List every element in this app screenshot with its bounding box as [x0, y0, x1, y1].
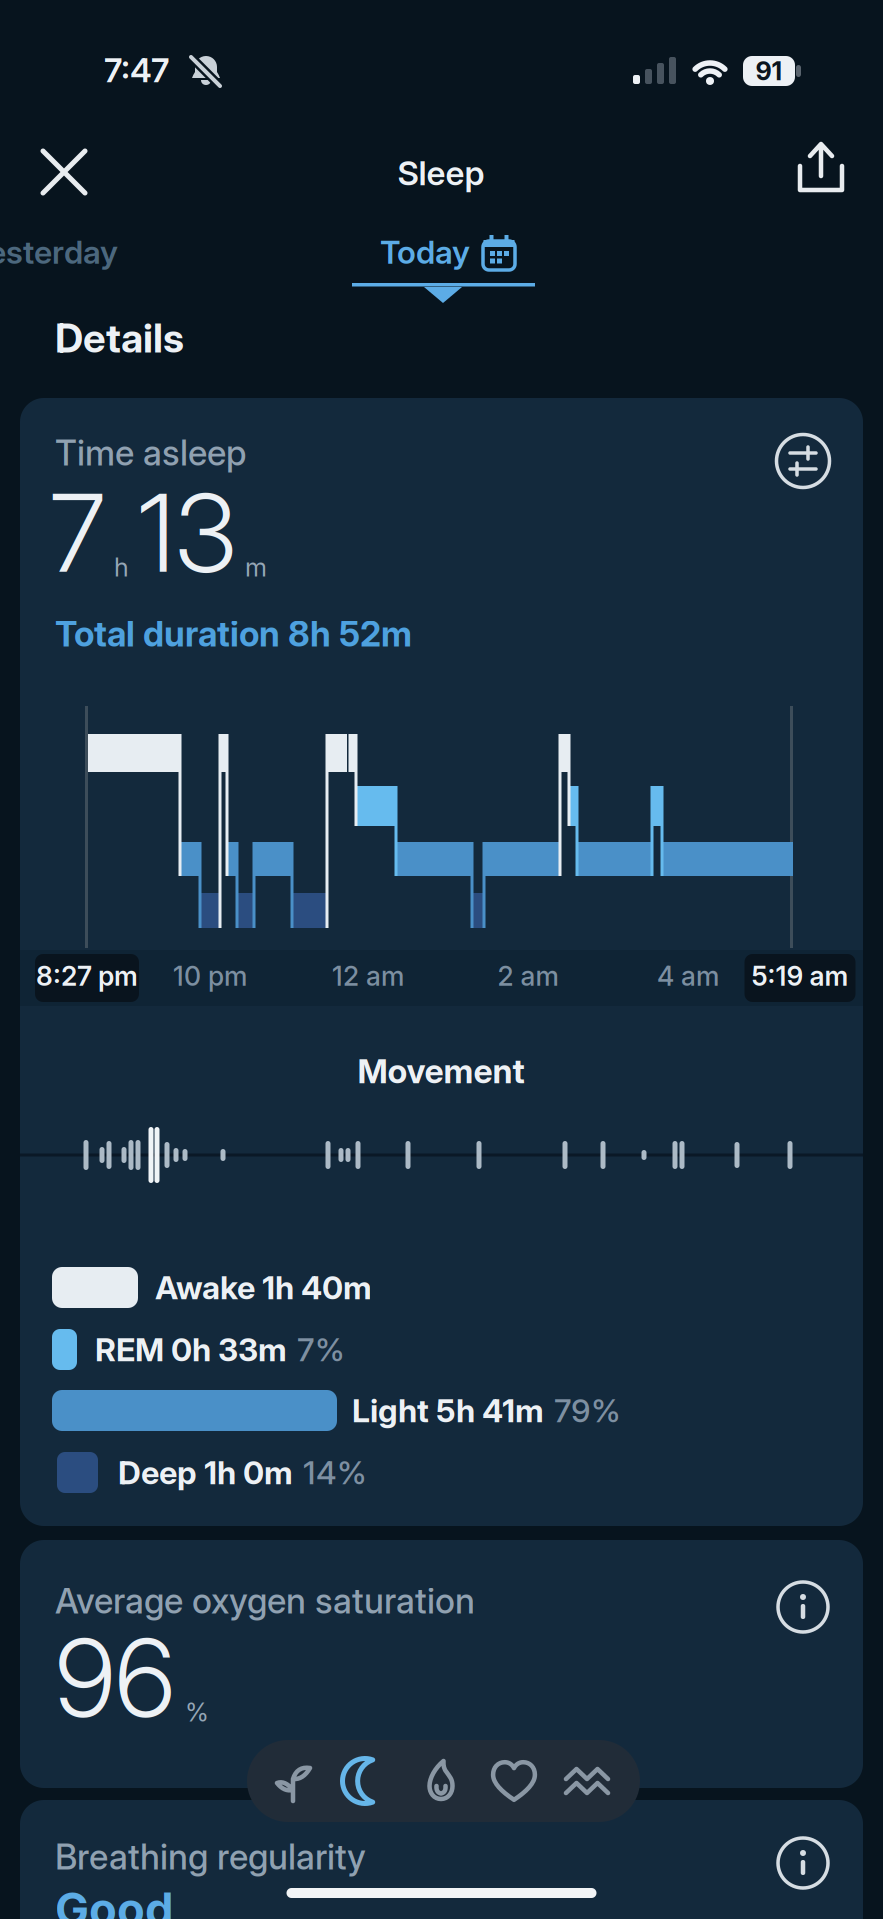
staticText: Good [55, 1882, 174, 1919]
staticText: Average oxygen saturation [55, 1580, 475, 1622]
button[interactable]: Share [793, 142, 849, 202]
staticText: 96 [55, 1613, 175, 1743]
staticText: Today [380, 233, 470, 271]
staticText: 12 am [332, 960, 404, 992]
staticText: 7:47 [104, 50, 169, 90]
staticText: 4 am [657, 960, 719, 992]
button[interactable]: Activity [413, 1748, 469, 1814]
staticText: Yesterday [0, 233, 118, 271]
staticText: 8:27 pm [36, 960, 138, 992]
staticText: Sleep [397, 153, 484, 193]
staticText: Total duration 8h 52m [55, 613, 412, 655]
button[interactable]: Info [774, 1578, 832, 1636]
staticText: 14% [303, 1453, 367, 1492]
staticText: % [185, 1697, 209, 1728]
staticText: 91 [755, 56, 782, 86]
staticText: Time asleep [55, 432, 246, 474]
staticText: Awake 1h 40m [155, 1268, 372, 1307]
button[interactable]: Info [774, 1834, 832, 1892]
staticText: m [245, 552, 267, 583]
staticText: Details [55, 314, 184, 362]
button[interactable]: Resilience [559, 1748, 615, 1814]
staticText: 13 [138, 468, 236, 598]
staticText: 79% [554, 1391, 621, 1430]
button[interactable]: Readiness [267, 1748, 323, 1814]
button[interactable]: Heart [486, 1748, 542, 1814]
button[interactable]: Sleep [340, 1748, 396, 1814]
staticText: Breathing regularity [55, 1836, 366, 1878]
staticText: 7% [297, 1330, 345, 1369]
staticText: REM 0h 33m [95, 1330, 287, 1369]
staticText: 10 pm [173, 960, 247, 992]
button[interactable]: Today [343, 227, 553, 277]
staticText: Deep 1h 0m [118, 1453, 293, 1492]
staticText: 7 [50, 468, 105, 598]
staticText: 5:19 am [751, 960, 848, 992]
button[interactable]: Yesterday [0, 229, 118, 275]
staticText: Light 5h 41m [352, 1391, 544, 1430]
staticText: 2 am [497, 960, 558, 992]
button[interactable]: Chart options [773, 431, 833, 491]
staticText: Movement [357, 1051, 524, 1091]
staticText: h [114, 552, 129, 583]
button[interactable]: Close [36, 144, 92, 200]
